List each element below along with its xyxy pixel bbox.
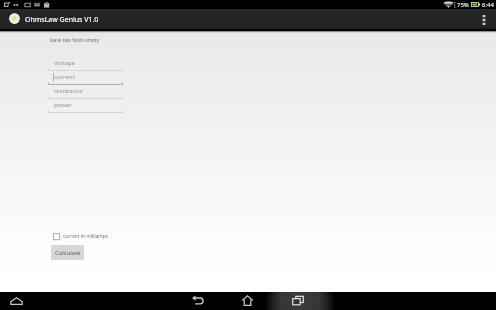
- button[interactable]: Recent apps: [287, 293, 309, 308]
- button[interactable]: Home: [236, 293, 258, 307]
- staticText: Calculate: [55, 249, 81, 257]
- button[interactable]: current in milliamps: [53, 231, 109, 241]
- staticText: voltage: [54, 59, 75, 67]
- button[interactable]: More options: [475, 9, 493, 30]
- button[interactable]: power: [48, 99, 123, 113]
- staticText: current in milliamps: [63, 233, 109, 240]
- button[interactable]: resistance: [48, 85, 123, 99]
- staticText: power: [54, 101, 72, 109]
- button[interactable]: voltage: [48, 57, 123, 71]
- staticText: 6:44: [482, 1, 494, 9]
- staticText: current: [54, 73, 75, 81]
- button[interactable]: current: [48, 71, 123, 85]
- staticText: resistance: [54, 87, 83, 95]
- staticText: 75%: [457, 1, 469, 9]
- button[interactable]: Quick menu: [8, 294, 24, 308]
- button[interactable]: Calculate: [51, 245, 84, 260]
- button[interactable]: Back: [187, 293, 209, 307]
- staticText: leave two fields empty: [50, 37, 100, 43]
- staticText: OhmsLaw Genius V1.0: [25, 15, 99, 25]
